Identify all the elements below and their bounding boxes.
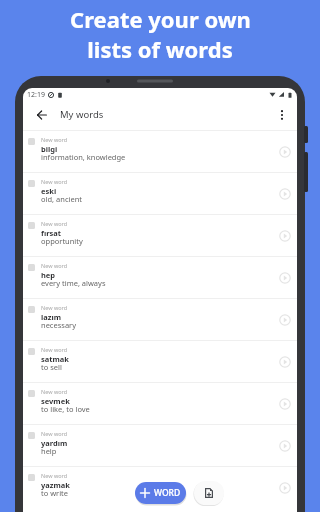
staticText: New word bbox=[41, 472, 68, 479]
staticText: Create your own bbox=[70, 4, 251, 34]
staticText: New word bbox=[41, 220, 68, 227]
staticText: New word bbox=[41, 178, 68, 185]
staticText: to like, to love bbox=[41, 404, 90, 414]
staticText: sevmek bbox=[41, 396, 70, 406]
staticText: New word bbox=[41, 388, 68, 395]
staticText: bilgi bbox=[41, 144, 58, 154]
staticText: to sell bbox=[41, 362, 62, 372]
staticText: information, knowledge bbox=[41, 152, 126, 162]
button[interactable] bbox=[36, 109, 48, 121]
button[interactable]: New word bbox=[23, 298, 297, 340]
button[interactable]: New word bbox=[23, 466, 297, 508]
button[interactable]: New word bbox=[23, 130, 297, 172]
staticText: satmak bbox=[41, 354, 69, 364]
button[interactable]: New word bbox=[23, 214, 297, 256]
staticText: to write bbox=[41, 488, 69, 498]
staticText: opportunity bbox=[41, 236, 83, 246]
staticText: yardım bbox=[41, 438, 68, 448]
staticText: every time, always bbox=[41, 278, 106, 288]
button[interactable] bbox=[194, 481, 224, 505]
staticText: My words bbox=[60, 108, 104, 121]
staticText: lists of words bbox=[87, 34, 233, 64]
button[interactable]: New word bbox=[23, 256, 297, 298]
staticText: eski bbox=[41, 186, 57, 196]
staticText: WORD bbox=[154, 487, 181, 499]
staticText: 12:19 bbox=[27, 90, 45, 100]
staticText: help bbox=[41, 446, 57, 456]
staticText: New word bbox=[41, 304, 68, 311]
staticText: New word bbox=[41, 346, 68, 353]
button[interactable]: New word bbox=[23, 382, 297, 424]
staticText: lazım bbox=[41, 312, 61, 322]
staticText: old, ancient bbox=[41, 194, 82, 204]
button[interactable]: New word bbox=[23, 340, 297, 382]
button[interactable]: New word bbox=[23, 424, 297, 466]
staticText: New word bbox=[41, 136, 68, 143]
staticText: fırsat bbox=[41, 228, 62, 238]
staticText: yazmak bbox=[41, 480, 70, 490]
button[interactable] bbox=[275, 108, 289, 122]
staticText: hep bbox=[41, 270, 56, 280]
staticText: New word bbox=[41, 430, 68, 437]
button[interactable]: New word bbox=[23, 172, 297, 214]
staticText: New word bbox=[41, 262, 68, 269]
button[interactable]: WORD bbox=[135, 482, 186, 504]
staticText: necessary bbox=[41, 320, 77, 330]
